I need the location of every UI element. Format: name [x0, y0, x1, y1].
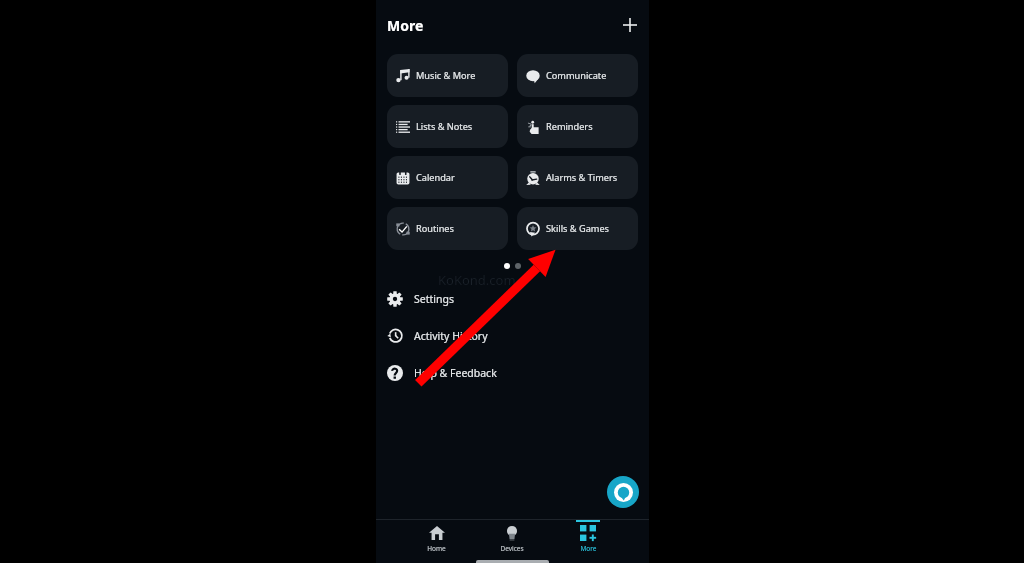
- button[interactable]: Home: [399, 520, 474, 563]
- staticText: More: [387, 16, 424, 35]
- staticText: Calendar: [416, 171, 455, 184]
- button[interactable]: Calendar: [387, 156, 508, 199]
- button[interactable]: Talk to Alexa: [607, 476, 639, 508]
- button[interactable]: Help & Feedback: [376, 354, 649, 391]
- button[interactable]: Activity History: [376, 317, 649, 354]
- button[interactable]: Lists & Notes: [387, 105, 508, 148]
- button[interactable]: Routines: [387, 207, 508, 250]
- staticText: Devices: [500, 544, 524, 553]
- staticText: Routines: [416, 222, 454, 235]
- button[interactable]: Settings: [376, 280, 649, 317]
- staticText: Alarms & Timers: [546, 171, 618, 184]
- staticText: Activity History: [414, 329, 488, 343]
- button[interactable]: Add: [617, 12, 643, 38]
- button[interactable]: More: [550, 520, 626, 563]
- staticText: Skills & Games: [546, 222, 609, 235]
- button[interactable]: Skills & Games: [517, 207, 638, 250]
- staticText: Settings: [414, 292, 454, 306]
- staticText: Communicate: [546, 69, 607, 82]
- button[interactable]: Devices: [474, 520, 550, 563]
- staticText: Reminders: [546, 120, 593, 133]
- staticText: More: [580, 544, 597, 553]
- staticText: Music & More: [416, 69, 476, 82]
- button[interactable]: Alarms & Timers: [517, 156, 638, 199]
- staticText: Help & Feedback: [414, 366, 497, 380]
- staticText: Home: [427, 544, 446, 553]
- staticText: KoKond.com: [438, 271, 516, 289]
- button[interactable]: Music & More: [387, 54, 508, 97]
- button[interactable]: Communicate: [517, 54, 638, 97]
- button[interactable]: Reminders: [517, 105, 638, 148]
- staticText: Lists & Notes: [416, 120, 473, 133]
